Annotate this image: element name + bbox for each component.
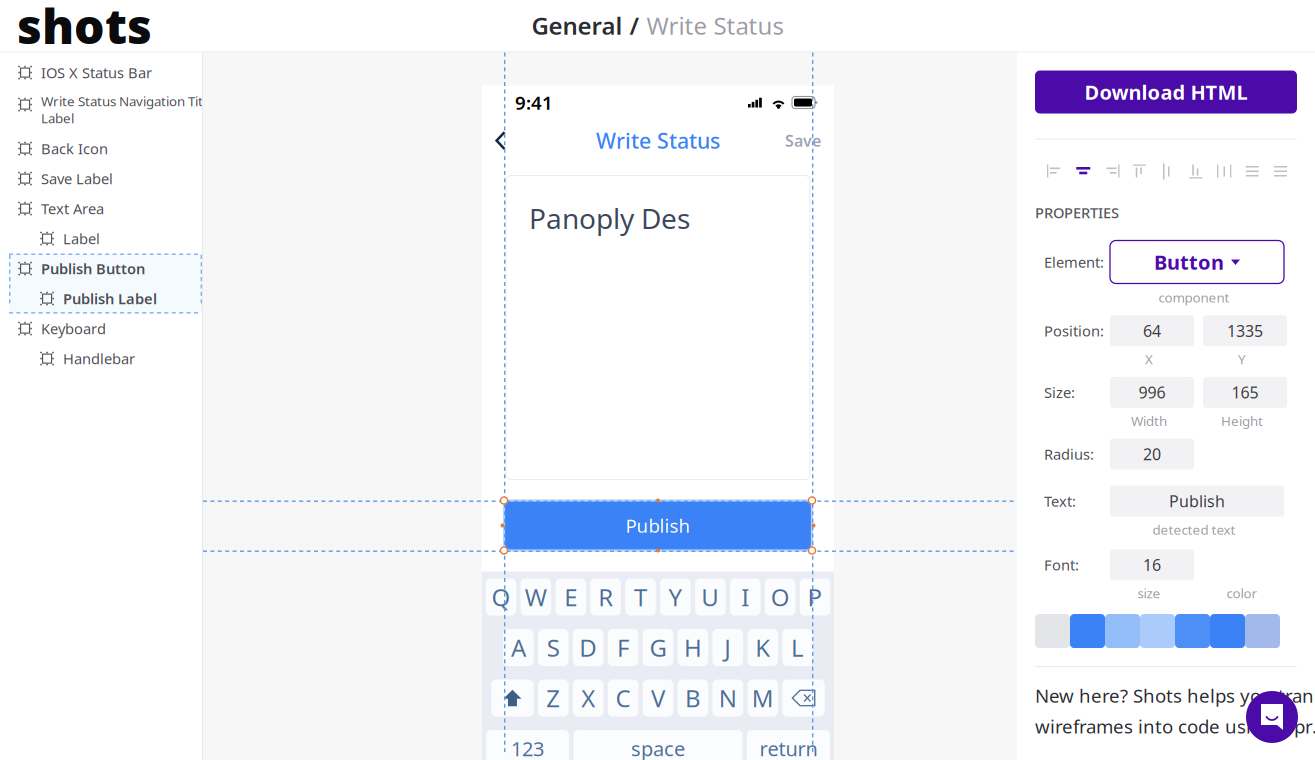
button[interactable]: Align bbox=[1185, 159, 1207, 183]
button[interactable]: Align bbox=[1242, 159, 1264, 183]
button[interactable]: Save Label bbox=[0, 163, 203, 193]
staticText: J bbox=[724, 632, 731, 663]
staticText: Label bbox=[41, 109, 74, 127]
button[interactable]: X bbox=[573, 679, 603, 716]
button[interactable]: I bbox=[730, 578, 760, 615]
staticText: Z bbox=[546, 682, 560, 714]
button[interactable]: O bbox=[765, 578, 795, 615]
button[interactable]: space bbox=[573, 730, 742, 760]
button[interactable]: G bbox=[643, 629, 673, 666]
staticText: Label bbox=[63, 229, 100, 248]
button[interactable]: Q bbox=[486, 578, 516, 615]
button[interactable]: W bbox=[521, 578, 551, 615]
button[interactable]: Delete bbox=[782, 679, 825, 716]
staticText: X bbox=[581, 682, 595, 714]
button[interactable]: Text Area bbox=[0, 193, 203, 223]
staticText: C bbox=[616, 682, 631, 714]
staticText: Keyboard bbox=[41, 319, 106, 338]
button[interactable]: Color swatch bbox=[1245, 614, 1280, 648]
button[interactable]: Color swatch bbox=[1210, 614, 1245, 648]
button[interactable]: T bbox=[625, 578, 656, 615]
button[interactable]: E bbox=[555, 578, 586, 615]
button[interactable]: M bbox=[747, 679, 778, 716]
staticText: Text: bbox=[1044, 491, 1076, 511]
button[interactable]: D bbox=[573, 629, 603, 666]
button[interactable]: Back Icon bbox=[0, 133, 203, 163]
staticText: Back Icon bbox=[41, 139, 108, 158]
staticText: Publish Button bbox=[41, 259, 145, 278]
button[interactable]: Back bbox=[484, 123, 518, 157]
button[interactable]: R bbox=[590, 578, 621, 615]
staticText: Q bbox=[491, 581, 510, 613]
staticText: X bbox=[1145, 350, 1153, 368]
staticText: Publish bbox=[1169, 490, 1225, 512]
button[interactable]: L bbox=[782, 629, 813, 666]
staticText: V bbox=[651, 682, 665, 714]
staticText: F bbox=[617, 632, 629, 663]
button[interactable]: C bbox=[608, 679, 638, 716]
button[interactable]: Publish bbox=[504, 500, 812, 550]
staticText: return bbox=[759, 735, 817, 760]
staticText: Font: bbox=[1044, 555, 1079, 575]
staticText: U bbox=[701, 581, 719, 613]
button[interactable]: IOS X Status Bar bbox=[0, 57, 203, 87]
staticText: Save Label bbox=[41, 169, 113, 188]
staticText: Size: bbox=[1044, 383, 1075, 402]
staticText: Publish Label bbox=[63, 289, 157, 308]
button[interactable]: Align bbox=[1129, 159, 1151, 183]
button[interactable]: J bbox=[712, 629, 743, 666]
button[interactable]: Color swatch bbox=[1070, 614, 1105, 648]
button[interactable]: Align bbox=[1157, 159, 1179, 183]
button[interactable]: P bbox=[800, 578, 830, 615]
button[interactable]: Write Status Navigation Title bbox=[0, 87, 203, 133]
button[interactable]: Y bbox=[660, 578, 691, 615]
button[interactable]: Handlebar bbox=[0, 343, 203, 373]
button[interactable]: Align bbox=[1213, 159, 1235, 183]
button[interactable]: A bbox=[503, 629, 534, 666]
button[interactable]: Publish Label bbox=[9, 283, 202, 313]
staticText: P bbox=[807, 581, 822, 613]
button[interactable]: Label bbox=[0, 223, 203, 253]
button[interactable]: Color swatch bbox=[1175, 614, 1210, 648]
button[interactable]: Color swatch bbox=[1105, 614, 1140, 648]
button[interactable]: Download HTML bbox=[1035, 70, 1297, 113]
button[interactable]: Publish Button bbox=[9, 253, 202, 283]
button[interactable]: F bbox=[608, 629, 638, 666]
button[interactable]: Button bbox=[1110, 240, 1284, 283]
button[interactable]: H bbox=[678, 629, 708, 666]
button[interactable]: Align bbox=[1044, 159, 1066, 183]
button[interactable]: U bbox=[695, 578, 726, 615]
staticText: 1335 bbox=[1227, 320, 1263, 341]
staticText: Panoply Des bbox=[529, 199, 690, 237]
button[interactable]: Save bbox=[785, 123, 821, 157]
staticText: G bbox=[649, 632, 666, 663]
button[interactable]: Shift bbox=[491, 679, 534, 716]
staticText: M bbox=[752, 682, 774, 714]
button[interactable]: Align bbox=[1072, 159, 1094, 183]
button[interactable]: B bbox=[678, 679, 708, 716]
staticText: O bbox=[771, 581, 790, 613]
staticText: Write Status Navigation Title bbox=[41, 92, 214, 110]
staticText: Download HTML bbox=[1084, 79, 1247, 105]
staticText: W bbox=[525, 581, 547, 613]
button[interactable]: Open chat bbox=[1246, 691, 1298, 743]
button[interactable]: K bbox=[747, 629, 778, 666]
staticText: component bbox=[1158, 288, 1229, 306]
button[interactable]: Color swatch bbox=[1140, 614, 1175, 648]
staticText: 20 bbox=[1143, 443, 1161, 465]
staticText: 9:41 bbox=[515, 90, 553, 115]
staticText: 165 bbox=[1231, 382, 1258, 403]
button[interactable]: Align bbox=[1270, 159, 1292, 183]
button[interactable]: N bbox=[712, 679, 743, 716]
button[interactable]: Keyboard bbox=[0, 313, 203, 343]
button[interactable]: Z bbox=[538, 679, 568, 716]
staticText: Write Status bbox=[596, 126, 720, 155]
staticText: Radius: bbox=[1044, 444, 1094, 464]
button[interactable]: return bbox=[747, 730, 830, 760]
button[interactable]: S bbox=[538, 629, 568, 666]
button[interactable]: 123 bbox=[486, 730, 569, 760]
button[interactable]: Align bbox=[1100, 159, 1122, 183]
staticText: PROPERTIES bbox=[1035, 203, 1119, 222]
button[interactable]: V bbox=[643, 679, 673, 716]
